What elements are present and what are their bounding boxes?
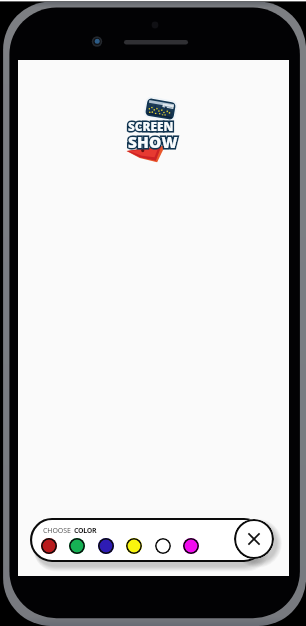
staticText: SCREEN — [128, 118, 174, 134]
button[interactable]: Close — [234, 519, 274, 559]
staticText: SHOW — [128, 132, 178, 153]
staticText: SHOW — [128, 132, 178, 153]
button[interactable] — [30, 518, 266, 562]
button[interactable]: Colour option 3 — [98, 538, 114, 554]
button[interactable]: Colour option 4 — [126, 538, 142, 554]
button[interactable]: Colour option 5 — [155, 538, 171, 554]
button[interactable]: Colour option 1 — [41, 538, 57, 554]
button[interactable]: Colour option 6 — [183, 538, 199, 554]
staticText: COLOR — [74, 526, 97, 536]
button[interactable]: Colour option 2 — [69, 538, 85, 554]
staticText: SCREEN — [128, 118, 174, 134]
staticText: CHOOSE — [43, 526, 71, 536]
